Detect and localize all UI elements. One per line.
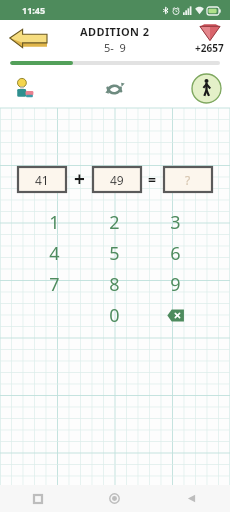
button[interactable]: Refresh [98,71,132,105]
staticText: 8 [109,272,120,297]
staticText: 3 [170,210,181,235]
button[interactable]: 4 [24,239,84,267]
button[interactable]: Home [76,485,153,512]
button[interactable]: 7 [24,270,84,298]
button[interactable]: 1 [24,208,84,236]
button[interactable]: 3 [145,208,206,236]
staticText: = [148,170,157,189]
button[interactable]: Back [6,24,52,54]
staticText: 11:45 [22,4,46,16]
button[interactable]: 41 [18,167,66,192]
staticText: 9 [170,272,181,297]
button[interactable]: Backspace [167,309,185,322]
staticText: +2657 [195,41,224,55]
staticText: ? [185,172,191,188]
button[interactable]: 5 [84,239,145,267]
button[interactable]: Profile [190,72,222,104]
button[interactable]: 9 [145,270,206,298]
staticText: 2 [109,210,120,235]
staticText: ADDITION 2 [80,24,150,39]
button[interactable]: Back [153,485,230,512]
button[interactable]: 49 [93,167,141,192]
staticText: 49 [110,172,124,188]
staticText: 7 [49,272,60,297]
staticText: 4 [49,241,60,266]
button[interactable]: 6 [145,239,206,267]
button[interactable]: Gems 2657 [195,24,224,55]
staticText: 5 [109,241,120,266]
button[interactable]: 0 [84,301,145,329]
button[interactable]: Hint [8,72,40,104]
staticText: + [74,166,85,192]
button[interactable]: Recents [0,485,76,512]
button[interactable]: ? [164,167,212,192]
staticText: 5- 9 [104,40,126,55]
button[interactable]: 2 [84,208,145,236]
staticText: 41 [35,172,49,188]
staticText: 6 [170,241,181,266]
staticText: 0 [109,303,120,328]
staticText: 1 [49,210,60,235]
button[interactable]: 8 [84,270,145,298]
